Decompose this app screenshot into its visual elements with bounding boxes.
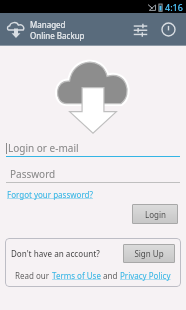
staticText: 4:16 xyxy=(165,1,183,13)
button[interactable]: Login or e-mail xyxy=(6,140,180,157)
staticText: Read our xyxy=(15,270,52,281)
staticText: Terms of Use xyxy=(52,270,101,281)
button[interactable]: Terms of Use xyxy=(52,270,101,281)
staticText: Privacy Policy xyxy=(120,270,171,281)
button[interactable]: Sign Up xyxy=(123,244,175,263)
staticText: Don't have an account? xyxy=(11,248,100,259)
staticText: Managed xyxy=(30,19,66,30)
staticText: Login or e-mail xyxy=(8,141,79,155)
button[interactable]: Password xyxy=(6,166,180,183)
staticText: Password xyxy=(10,167,56,181)
staticText: Sign Up xyxy=(134,248,164,259)
staticText: Online Backup xyxy=(30,30,85,41)
button[interactable]: Login xyxy=(132,204,178,224)
button[interactable]: Info xyxy=(154,13,182,46)
button[interactable]: Settings xyxy=(126,13,154,46)
staticText: Login xyxy=(145,209,166,220)
button[interactable]: Forgot your password? xyxy=(7,187,93,200)
staticText: Forgot your password? xyxy=(7,189,93,200)
button[interactable]: Privacy Policy xyxy=(120,270,171,281)
staticText: and xyxy=(101,270,120,281)
